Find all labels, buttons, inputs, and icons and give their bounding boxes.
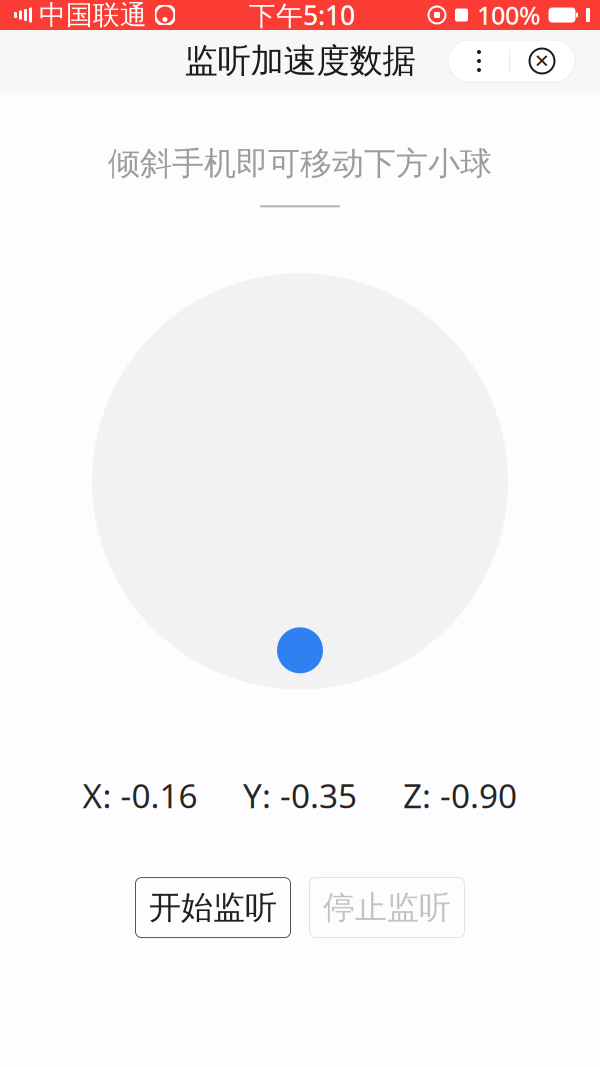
staticText: 监听加速度数据 xyxy=(184,40,415,81)
staticText: Z: -0.90 xyxy=(403,773,517,818)
staticText: 100% xyxy=(477,0,541,32)
staticText: 中国联通 xyxy=(39,0,147,31)
staticText: 停止监听 xyxy=(323,888,451,927)
button[interactable]: 关闭 xyxy=(510,40,574,82)
staticText: 下午5:10 xyxy=(249,0,355,33)
staticText: 倾斜手机即可移动下方小球 xyxy=(108,144,492,183)
button[interactable]: 开始监听 xyxy=(135,878,290,938)
staticText: 开始监听 xyxy=(149,888,277,927)
button[interactable]: 停止监听 xyxy=(309,878,464,938)
staticText: Y: -0.35 xyxy=(243,773,357,818)
staticText: ✕ xyxy=(534,50,550,72)
staticText: X: -0.16 xyxy=(82,773,197,818)
button[interactable]: 更多 xyxy=(449,40,509,82)
